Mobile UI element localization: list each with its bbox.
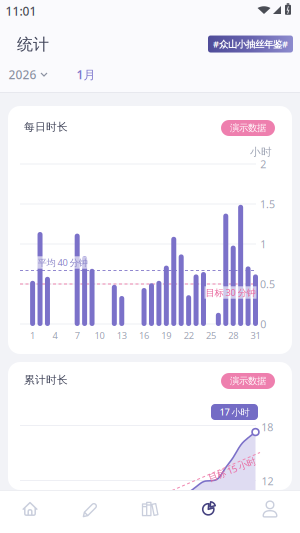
staticText: 17 小时 xyxy=(219,406,249,418)
staticText: 18 xyxy=(261,420,273,434)
staticText: 13 xyxy=(117,329,127,342)
staticText: 演示数据 xyxy=(230,122,266,134)
button[interactable]: 记录 xyxy=(60,490,120,533)
button[interactable]: 演示数据 xyxy=(221,373,275,389)
staticText: 1月 xyxy=(76,66,95,82)
staticText: 4 xyxy=(52,329,57,342)
staticText: 每日时长 xyxy=(24,120,68,133)
staticText: 平均 40 分钟 xyxy=(37,256,87,269)
staticText: 10 xyxy=(94,329,104,342)
button[interactable]: 统计 xyxy=(180,490,240,533)
button[interactable]: 2026 xyxy=(8,66,47,82)
staticText: 7 xyxy=(75,329,80,342)
button[interactable]: 我的 xyxy=(240,490,300,533)
staticText: 小时 xyxy=(250,145,272,158)
staticText: 1 xyxy=(260,237,266,251)
staticText: 0.5 xyxy=(260,277,275,291)
staticText: 11:01 xyxy=(5,3,36,19)
button[interactable]: 书架 xyxy=(120,490,180,533)
button[interactable]: 首页 xyxy=(0,490,60,533)
staticText: 2026 xyxy=(8,66,36,82)
staticText: 目标 15 小时 xyxy=(207,463,257,476)
staticText: 31 xyxy=(250,329,260,342)
staticText: 目标 30 分钟 xyxy=(205,286,255,299)
staticText: 12 xyxy=(262,474,274,488)
staticText: 22 xyxy=(184,329,194,342)
button[interactable]: 演示数据 xyxy=(221,120,275,136)
button[interactable]: 1月 xyxy=(76,66,95,82)
staticText: 1.5 xyxy=(260,197,275,211)
staticText: 统计 xyxy=(17,35,49,54)
staticText: 19 xyxy=(161,329,171,342)
staticText: 0 xyxy=(260,317,266,331)
button[interactable]: #众山小抽丝年鉴# xyxy=(208,35,293,52)
staticText: 1 xyxy=(30,329,35,342)
staticText: 25 xyxy=(206,329,216,342)
staticText: 2 xyxy=(260,157,266,171)
staticText: #众山小抽丝年鉴# xyxy=(213,38,288,50)
staticText: 累计时长 xyxy=(24,373,68,386)
staticText: 演示数据 xyxy=(230,375,266,387)
staticText: 28 xyxy=(228,329,238,342)
staticText: 16 xyxy=(139,329,149,342)
